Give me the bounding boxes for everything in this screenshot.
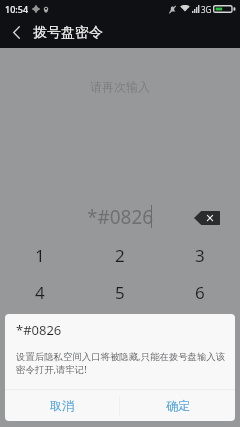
button[interactable]: Back [0,18,33,47]
staticText: 3 [195,244,205,267]
staticText: 取消 [50,398,74,413]
button[interactable]: Backspace [187,200,227,236]
staticText: 请再次输入 [90,79,150,94]
button[interactable]: 取消 [5,390,119,421]
button[interactable]: 6 [160,274,240,311]
button[interactable]: 确定 [120,390,235,421]
button[interactable]: 2 [80,237,160,274]
staticText: *#0826 [16,321,62,339]
staticText: 10:54 [5,3,29,15]
button[interactable]: 8 [80,311,160,348]
button[interactable]: 4 [0,274,80,311]
button[interactable]: 7 [0,311,80,348]
staticText: 拨号盘密令 [33,24,103,42]
button[interactable]: 3 [160,237,240,274]
staticText: 3G [201,4,212,15]
staticText: 1 [35,244,45,267]
staticText: 7 [35,318,45,341]
staticText: 确定 [166,398,190,413]
staticText: 6 [195,281,205,304]
staticText: 4 [35,281,45,304]
staticText: *#0826 [87,204,154,230]
staticText: 设置后隐私空间入口将被隐藏,只能在拨号盘输入该 密令打开,请牢记! [16,350,226,376]
button[interactable]: 1 [0,237,80,274]
staticText: 5 [115,281,125,304]
button[interactable]: 9 [160,311,240,348]
button[interactable]: 5 [80,274,160,311]
staticText: 2 [115,244,125,267]
